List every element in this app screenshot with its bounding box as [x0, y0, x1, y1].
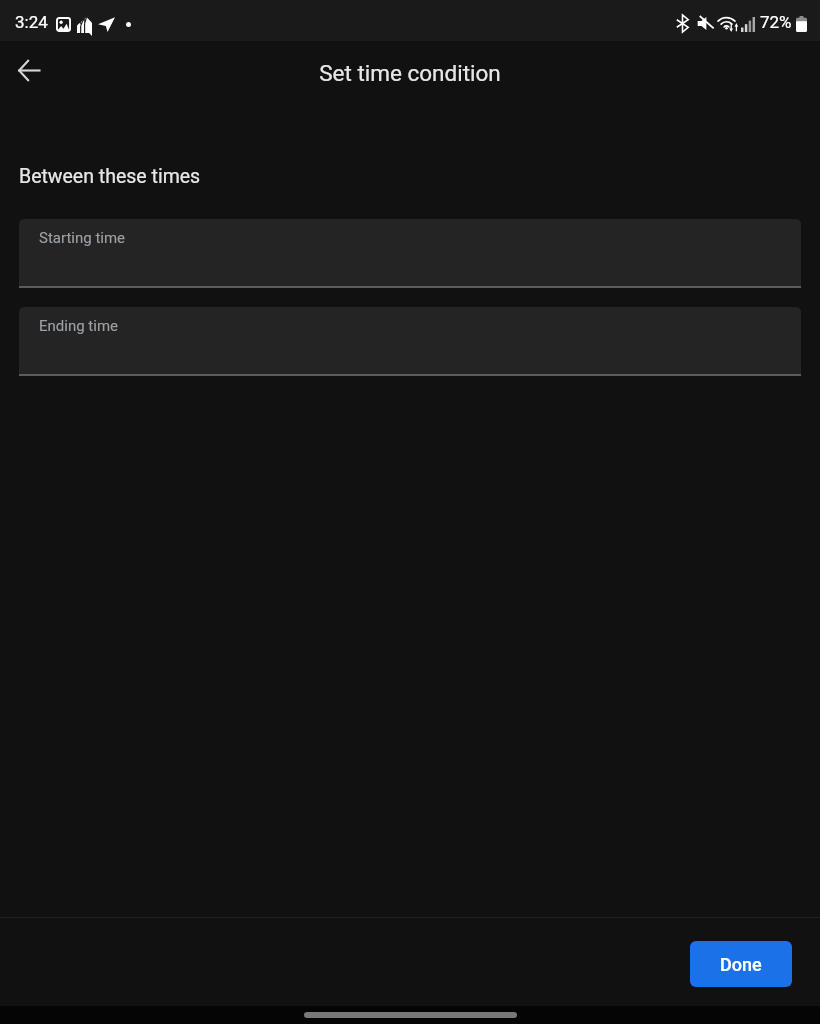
button[interactable]: Starting time [19, 219, 801, 288]
button[interactable]: Back [7, 48, 51, 92]
staticText: Set time condition [319, 60, 501, 86]
staticText: 72% [760, 12, 792, 32]
staticText: Done [720, 954, 762, 975]
staticText: 3:24 [15, 12, 48, 32]
staticText: Between these times [19, 165, 201, 188]
button[interactable]: Ending time [19, 307, 801, 376]
staticText: Starting time [39, 229, 126, 247]
staticText: Ending time [39, 317, 119, 335]
button[interactable]: Done [690, 941, 792, 987]
